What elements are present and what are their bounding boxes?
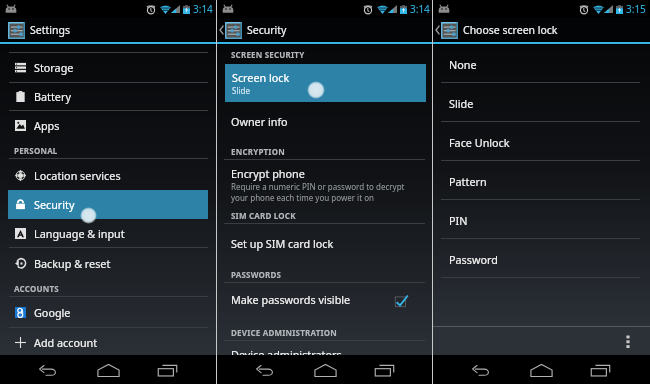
button[interactable]: None: [433, 45, 650, 83]
button[interactable]: Location services: [0, 161, 216, 189]
staticText: Make passwords visible: [231, 292, 351, 307]
button[interactable]: Set up SIM card lock: [217, 230, 432, 256]
button[interactable]: Slide: [433, 84, 650, 122]
button[interactable]: Google: [0, 298, 216, 326]
staticText: Set up SIM card lock: [231, 236, 334, 251]
staticText: ACCOUNTS: [14, 283, 59, 294]
staticText: Password: [449, 252, 498, 267]
staticText: Google: [34, 305, 71, 320]
button[interactable]: Language & input: [0, 219, 216, 247]
button[interactable]: Home: [306, 355, 344, 384]
button[interactable]: Battery: [0, 82, 216, 110]
staticText: Owner info: [231, 114, 288, 129]
button[interactable]: Back: [462, 355, 500, 384]
staticText: 3:15: [626, 2, 646, 16]
button[interactable]: Home: [522, 355, 560, 384]
button[interactable]: Apps: [0, 111, 216, 139]
button[interactable]: Screen lock: [225, 64, 426, 102]
button[interactable]: Owner info: [217, 108, 432, 134]
button[interactable]: Security: [8, 190, 208, 219]
staticText: SCREEN SECURITY: [231, 49, 305, 60]
button[interactable]: Add account: [0, 328, 216, 356]
button[interactable]: Recents: [581, 355, 619, 384]
staticText: Screen lock: [232, 70, 290, 85]
staticText: Apps: [34, 118, 60, 133]
button[interactable]: Home: [89, 355, 127, 384]
staticText: Slide: [449, 96, 474, 111]
staticText: Location services: [34, 168, 121, 183]
staticText: PASSWORDS: [231, 269, 282, 280]
button[interactable]: Pattern: [433, 162, 650, 200]
staticText: Encrypt phone: [231, 166, 305, 181]
button[interactable]: Back: [246, 355, 284, 384]
button[interactable]: Make passwords visible: [217, 286, 432, 312]
button[interactable]: More options: [619, 326, 637, 355]
button[interactable]: Face Unlock: [433, 123, 650, 161]
staticText: Pattern: [449, 174, 487, 189]
staticText: Face Unlock: [449, 135, 510, 150]
button[interactable]: Password: [433, 240, 650, 278]
staticText: ENCRYPTION: [231, 146, 285, 157]
staticText: Backup & reset: [34, 256, 111, 271]
staticText: DEVICE ADMINISTRATION: [231, 327, 338, 338]
staticText: Language & input: [34, 226, 125, 241]
staticText: Require a numeric PIN or password to dec…: [231, 181, 405, 192]
button[interactable]: Recents: [365, 355, 403, 384]
staticText: Storage: [34, 60, 74, 75]
staticText: Settings: [30, 23, 70, 37]
staticText: Security: [247, 23, 287, 37]
staticText: PIN: [449, 213, 468, 228]
button[interactable]: PIN: [433, 201, 650, 239]
staticText: PERSONAL: [14, 145, 58, 156]
staticText: 3:14: [410, 2, 430, 16]
staticText: Security: [34, 197, 75, 212]
button[interactable]: Backup & reset: [0, 249, 216, 277]
staticText: Choose screen lock: [463, 23, 558, 37]
staticText: Battery: [34, 89, 71, 104]
staticText: SIM CARD LOCK: [231, 210, 296, 221]
staticText: None: [449, 57, 477, 72]
staticText: Add account: [34, 335, 98, 350]
button[interactable]: Back: [29, 355, 67, 384]
staticText: 3:14: [193, 2, 213, 16]
staticText: Slide: [232, 85, 250, 96]
staticText: Device administrators: [231, 347, 342, 362]
button[interactable]: Encrypt phone: [217, 160, 432, 186]
button[interactable]: Storage: [0, 53, 216, 81]
staticText: your phone each time you power it on: [231, 192, 374, 203]
button[interactable]: Recents: [148, 355, 186, 384]
